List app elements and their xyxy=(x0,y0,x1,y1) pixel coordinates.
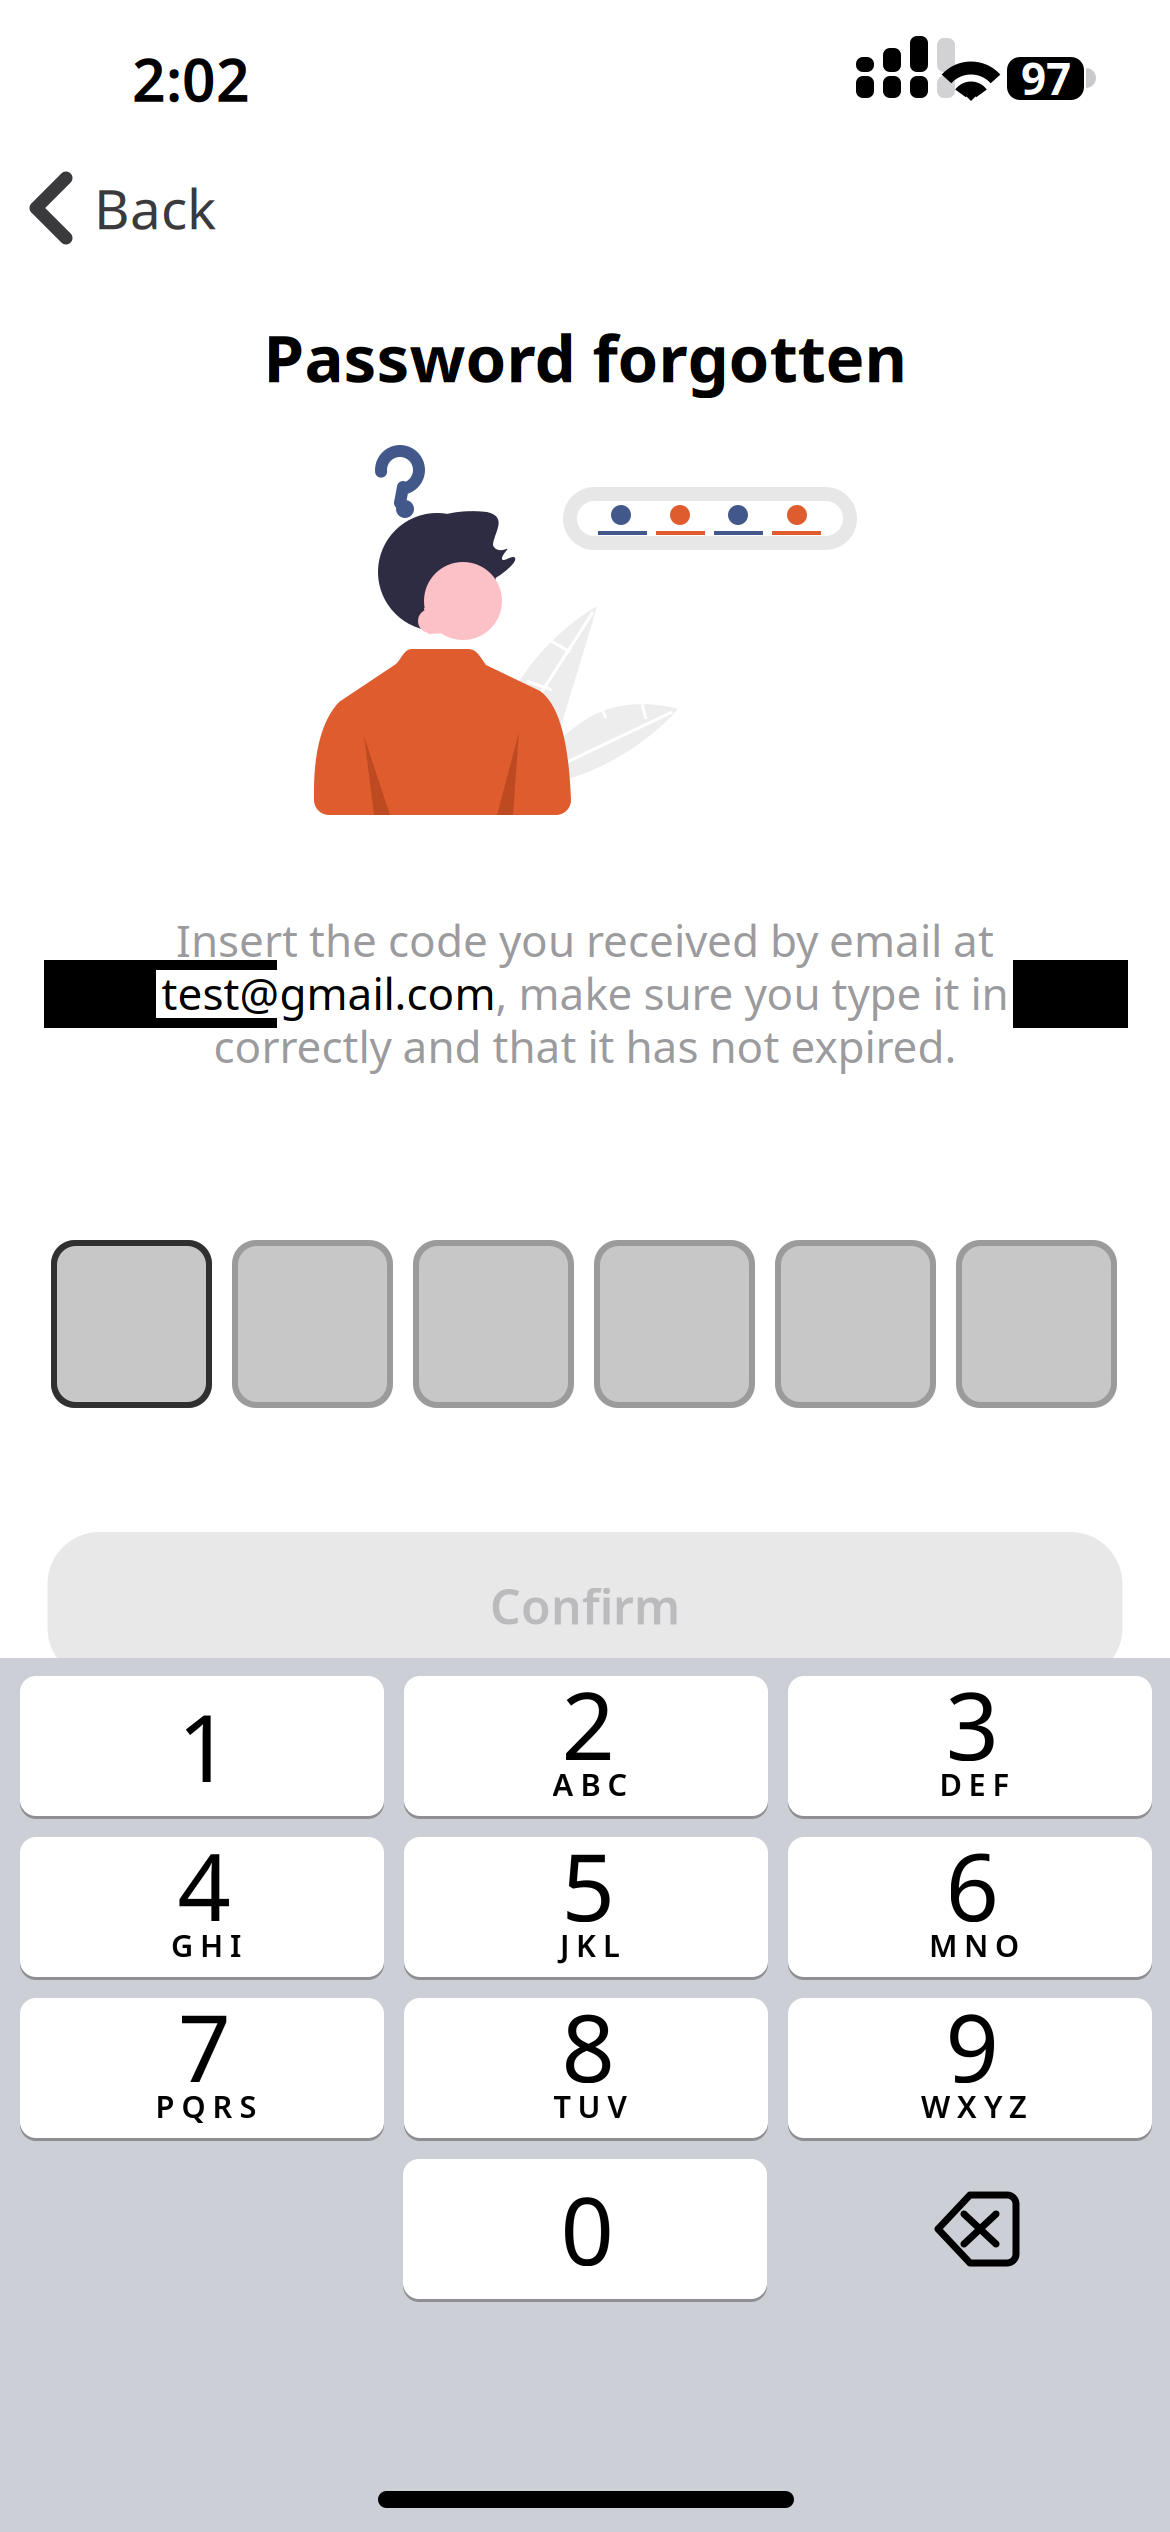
staticText: Password forgotten xyxy=(263,314,906,400)
button[interactable]: 3 xyxy=(788,1676,1152,1816)
staticText: ABC xyxy=(552,1764,627,1804)
staticText: 2 xyxy=(561,1662,614,1786)
staticText: 0 xyxy=(560,2167,613,2291)
button[interactable]: 1 xyxy=(20,1676,384,1816)
staticText: , make sure you type it in xyxy=(495,964,1008,1022)
button[interactable]: Back xyxy=(0,160,280,256)
staticText: 1 xyxy=(177,1684,230,1808)
button[interactable]: 0 xyxy=(403,2159,767,2299)
staticText: 97 xyxy=(1021,49,1071,107)
staticText: GHI xyxy=(171,1925,241,1965)
staticText: DEF xyxy=(939,1764,1008,1804)
staticText: 7 xyxy=(177,1984,230,2108)
button[interactable]: 5 xyxy=(404,1837,768,1977)
staticText: Confirm xyxy=(490,1574,680,1638)
staticText: PQRS xyxy=(155,2086,256,2126)
staticText: 6 xyxy=(945,1823,998,1947)
staticText: 9 xyxy=(945,1984,998,2108)
staticText: WXYZ xyxy=(921,2086,1027,2126)
staticText: 4 xyxy=(177,1823,230,1947)
button[interactable]: Confirm xyxy=(47,1532,1122,1680)
staticText: 3 xyxy=(945,1662,998,1786)
staticText: 8 xyxy=(561,1984,614,2108)
button[interactable]: 4 xyxy=(20,1837,384,1977)
staticText: 2:02 xyxy=(132,40,250,118)
staticText: test@gmail.com xyxy=(161,964,495,1022)
button[interactable]: 6 xyxy=(788,1837,1152,1977)
staticText: correctly and that it has not expired. xyxy=(213,1017,956,1075)
staticText: 5 xyxy=(561,1823,614,1947)
staticText: Back xyxy=(94,172,216,244)
staticText: MNO xyxy=(929,1925,1019,1965)
staticText: Insert the code you received by email at xyxy=(176,911,994,969)
staticText: JKL xyxy=(560,1925,620,1965)
staticText: TUV xyxy=(553,2086,626,2126)
button[interactable]: 9 xyxy=(788,1998,1152,2138)
button[interactable]: 2 xyxy=(404,1676,768,1816)
button[interactable]: Delete xyxy=(910,2173,1044,2285)
button[interactable]: 8 xyxy=(404,1998,768,2138)
button[interactable]: 7 xyxy=(20,1998,384,2138)
